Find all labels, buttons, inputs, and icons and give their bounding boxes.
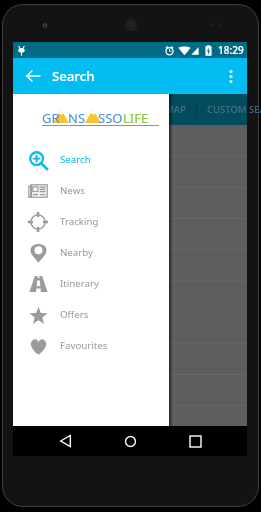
- staticText: Offers: [60, 308, 89, 321]
- staticText: Tracking: [60, 215, 99, 228]
- staticText: Favourites: [60, 339, 108, 352]
- staticText: LIFE: [123, 109, 149, 127]
- staticText: News: [60, 184, 85, 197]
- button[interactable]: Home: [117, 428, 143, 454]
- button[interactable]: More options: [218, 63, 244, 89]
- staticText: Search: [52, 67, 95, 85]
- button[interactable]: Favourites: [13, 330, 169, 361]
- staticText: SSO: [98, 109, 123, 127]
- button[interactable]: Back: [20, 63, 46, 89]
- button[interactable]: Back: [52, 428, 78, 454]
- button[interactable]: MAP: [165, 103, 186, 116]
- button[interactable]: News: [13, 175, 169, 206]
- staticText: NS: [68, 109, 86, 127]
- staticText: 18:29: [218, 43, 244, 57]
- staticText: GR: [42, 109, 60, 127]
- button[interactable]: Tracking: [13, 206, 169, 237]
- button[interactable]: Recents: [182, 428, 208, 454]
- staticText: Itinerary: [60, 277, 99, 290]
- button[interactable]: Offers: [13, 299, 169, 330]
- button[interactable]: Itinerary: [13, 268, 169, 299]
- staticText: Search: [60, 153, 91, 166]
- button[interactable]: CUSTOM SEARCH: [207, 103, 261, 116]
- button[interactable]: Search: [13, 144, 169, 175]
- staticText: Nearby: [60, 246, 93, 259]
- button[interactable]: Nearby: [13, 237, 169, 268]
